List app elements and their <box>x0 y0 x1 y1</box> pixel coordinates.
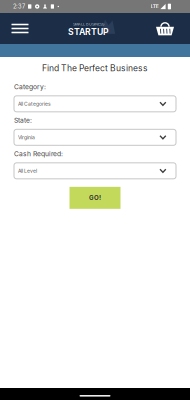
staticText: State: <box>14 116 32 124</box>
staticText: All Categories <box>18 101 51 107</box>
staticText: 2:37 <box>13 3 25 10</box>
button[interactable]: All Level <box>14 163 176 179</box>
staticText: All Level <box>18 168 37 174</box>
staticText: SMALL BUSINESS <box>73 22 104 26</box>
staticText: Category: <box>14 83 46 91</box>
staticText: GO! <box>89 194 101 201</box>
staticText: LTE <box>151 3 159 9</box>
button[interactable]: Menu <box>1 13 39 44</box>
button[interactable]: GO! <box>69 187 120 209</box>
staticText: Virginia <box>18 134 35 140</box>
button[interactable]: All Categories <box>14 96 176 112</box>
staticText: Cash Required: <box>14 150 63 158</box>
staticText: Find The Perfect Business <box>42 63 148 73</box>
button[interactable]: Virginia <box>14 129 176 145</box>
staticText: STARTUP <box>68 27 109 37</box>
button[interactable]: Cart <box>141 13 189 44</box>
